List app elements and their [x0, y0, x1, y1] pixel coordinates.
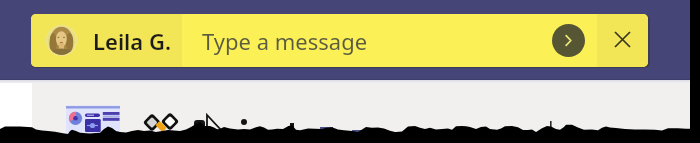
staticText: Leila G.: [93, 26, 171, 56]
button[interactable]: Close: [597, 14, 648, 67]
staticText: Type a message: [202, 26, 368, 56]
button[interactable]: Leila G.: [31, 14, 182, 67]
button[interactable]: Send: [552, 24, 585, 57]
